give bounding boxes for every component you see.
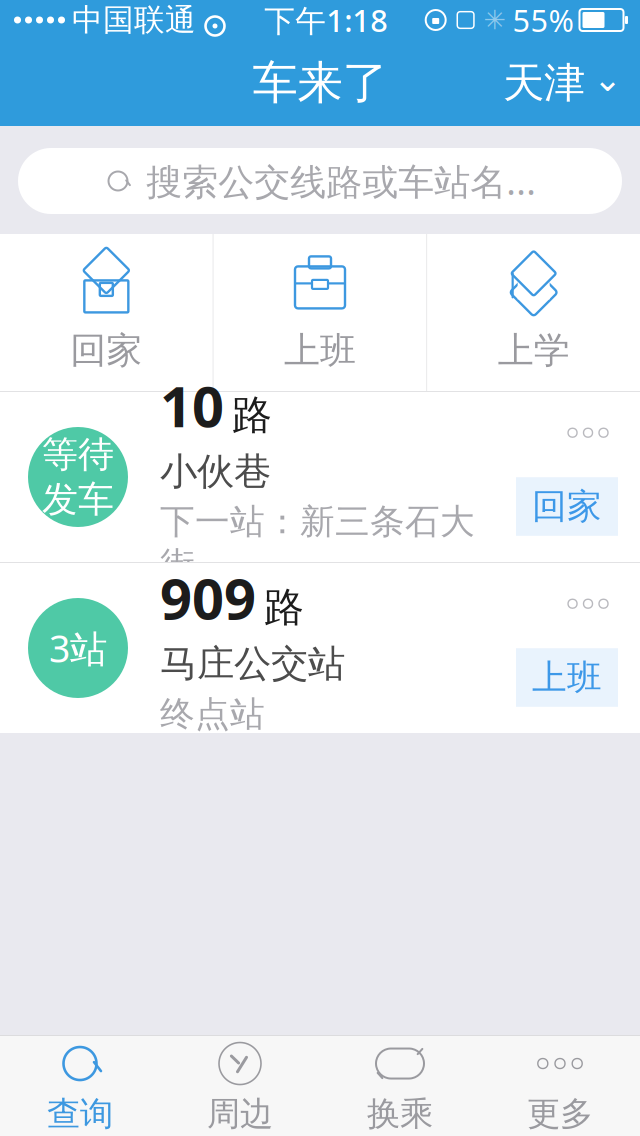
staticText: 下午1:18 [264, 0, 388, 40]
button[interactable]: 周边 [160, 1036, 320, 1136]
staticText: 搜索公交线路或车站名... [146, 157, 536, 205]
staticText: 上学 [498, 328, 570, 373]
staticText: 回家 [532, 485, 602, 528]
staticText: 路 [232, 390, 272, 440]
staticText: 换乘 [367, 1093, 433, 1134]
staticText: 路 [264, 583, 304, 632]
staticText: ⌄ [593, 59, 622, 99]
staticText: 天津 [503, 58, 585, 108]
staticText: 下一站：新三条石大街 [160, 500, 475, 586]
button[interactable]: 3站 [0, 563, 640, 733]
button[interactable]: 查询 [0, 1036, 160, 1136]
button[interactable]: More options [558, 589, 618, 618]
staticText: ✳ [483, 5, 505, 35]
staticText: 终点站 [160, 693, 265, 735]
staticText: 更多 [527, 1093, 593, 1134]
staticText: 上班 [532, 656, 602, 699]
staticText: 等待 [42, 432, 114, 476]
staticText: 周边 [207, 1093, 273, 1134]
staticText: 小伙巷 [160, 449, 271, 495]
staticText: 马庄公交站 [160, 641, 345, 687]
staticText: 中国联通 [72, 1, 196, 39]
staticText: 10 [160, 368, 224, 443]
staticText: 发车 [42, 477, 114, 522]
staticText: 909 [160, 561, 256, 635]
button[interactable]: More options [558, 418, 618, 447]
button[interactable]: 上学 [427, 234, 640, 391]
button[interactable]: 更多 [480, 1036, 640, 1136]
staticText: 3站 [49, 623, 107, 673]
button[interactable]: 天津 [485, 48, 640, 118]
staticText: 上班 [284, 328, 356, 373]
button[interactable]: 搜索公交线路或车站名... [18, 148, 622, 214]
button[interactable]: 换乘 [320, 1036, 480, 1136]
staticText: 55% [512, 0, 573, 40]
staticText: 回家 [70, 328, 142, 373]
staticText: 车来了 [252, 55, 387, 111]
button[interactable]: 上班 [214, 234, 426, 391]
button[interactable]: 等待 [0, 392, 640, 562]
button[interactable]: 回家 [0, 234, 213, 391]
staticText: 查询 [47, 1093, 113, 1134]
